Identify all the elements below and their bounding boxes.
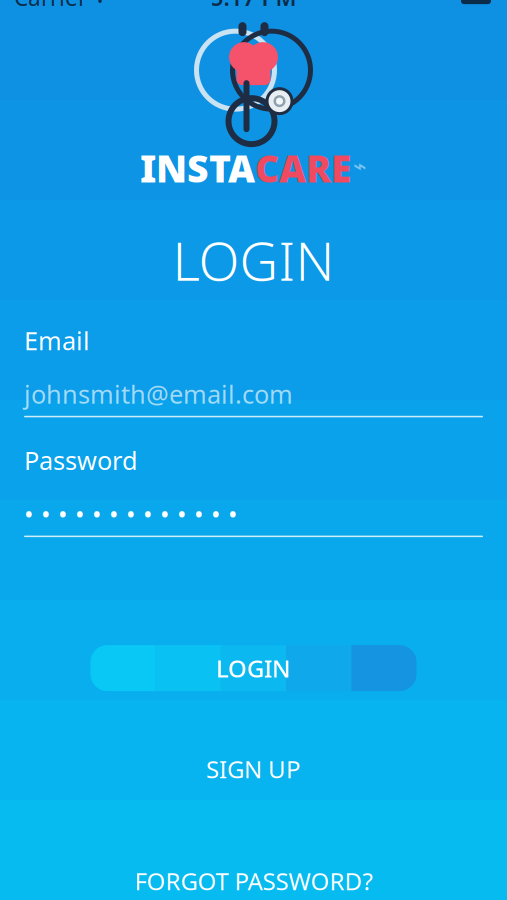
- staticText: Email: [24, 323, 90, 357]
- staticText: johnsmith@email.com: [24, 377, 293, 411]
- button[interactable]: FORGOT PASSWORD?: [112, 853, 394, 900]
- staticText: SIGN UP: [206, 753, 301, 785]
- staticText: 5:17 PM: [210, 0, 296, 12]
- staticText: LOGIN: [216, 652, 291, 684]
- staticText: CARE: [255, 143, 351, 193]
- staticText: INSTA: [140, 143, 255, 193]
- staticText: Password: [24, 443, 138, 477]
- staticText: LOGIN: [172, 225, 334, 295]
- button[interactable]: LOGIN: [90, 645, 416, 691]
- staticText: ⌁: [353, 153, 367, 179]
- staticText: Carrier: [14, 0, 87, 12]
- staticText: FORGOT PASSWORD?: [134, 865, 372, 897]
- button[interactable]: SIGN UP: [178, 741, 329, 797]
- staticText: • • • • • • • • • • • • •: [24, 497, 238, 531]
